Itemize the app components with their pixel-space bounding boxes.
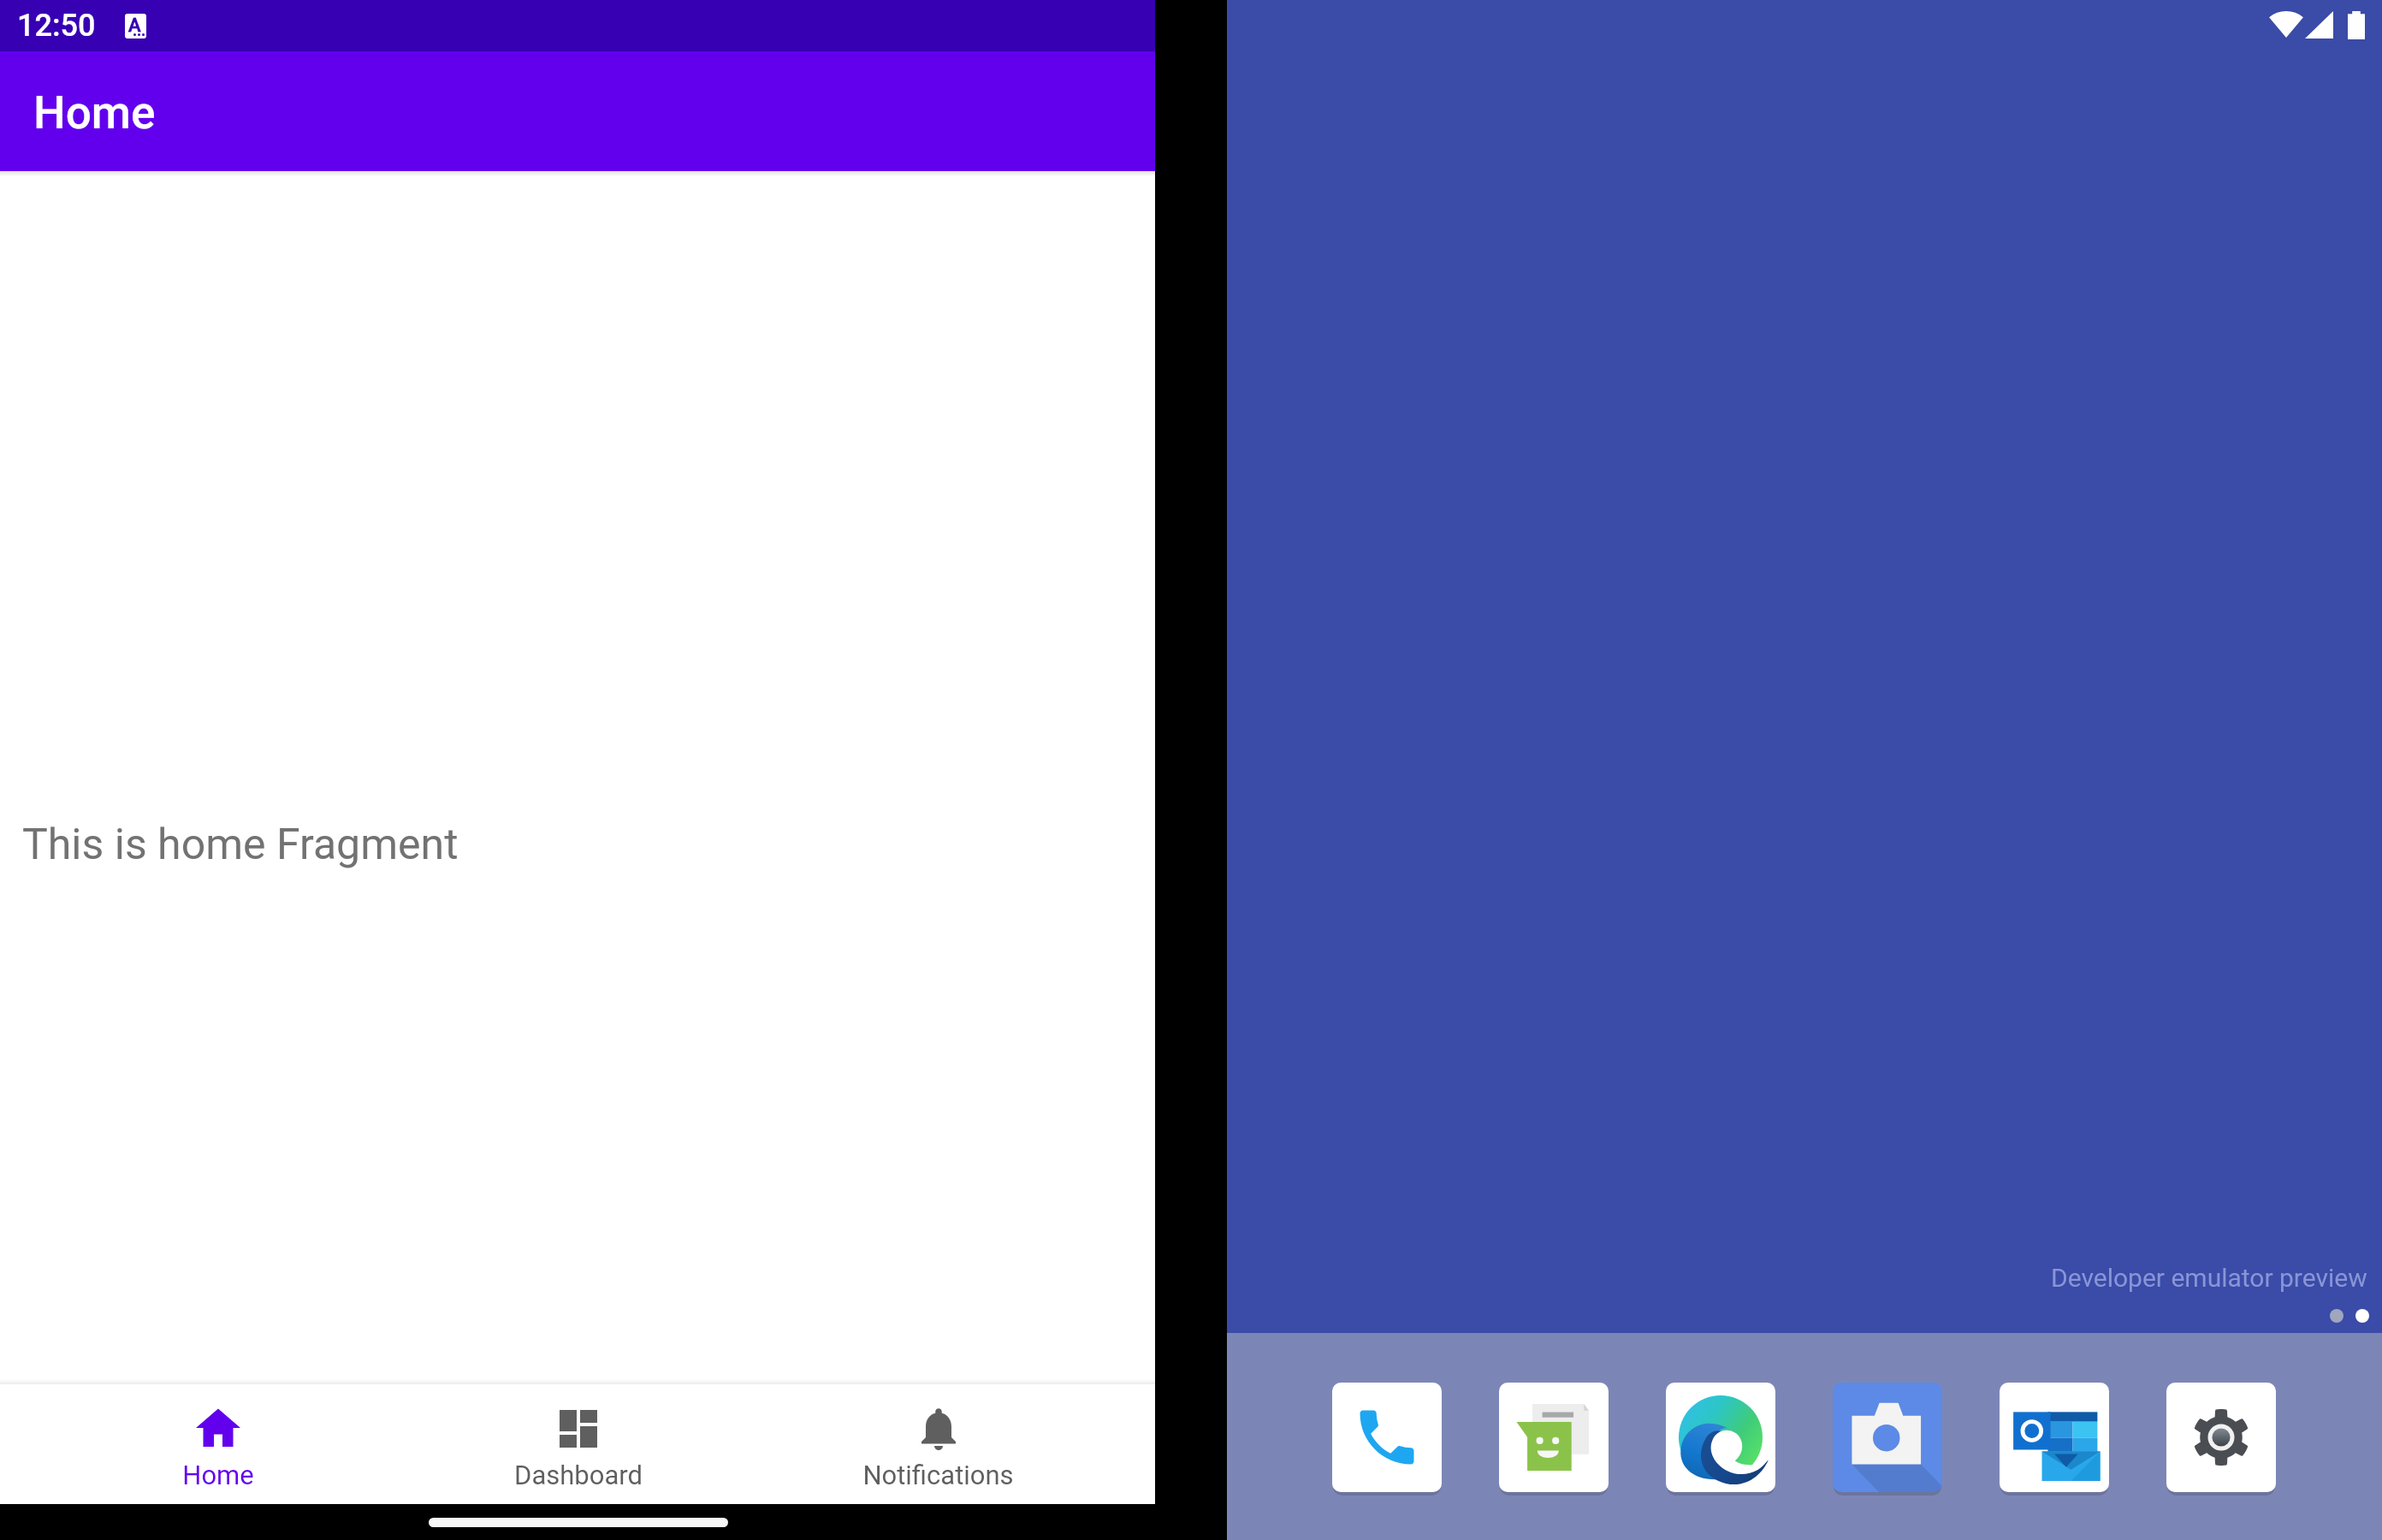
staticText: Home — [182, 1460, 254, 1490]
button[interactable]: Settings — [2166, 1383, 2276, 1492]
button[interactable]: Home — [38, 1384, 398, 1504]
staticText: Dashboard — [514, 1460, 643, 1490]
button[interactable]: Edge browser — [1666, 1383, 1775, 1492]
button[interactable]: Camera — [1833, 1383, 1942, 1492]
button[interactable]: Notifications — [758, 1384, 1118, 1504]
staticText: Home — [33, 86, 156, 139]
button[interactable]: Messages — [1499, 1383, 1609, 1492]
staticText: This is home Fragment — [22, 820, 459, 870]
staticText: Developer emulator preview — [2051, 1263, 2367, 1293]
staticText: Notifications — [862, 1460, 1014, 1490]
staticText: 12:50 — [17, 8, 96, 44]
button[interactable]: Dashboard — [398, 1384, 758, 1504]
button[interactable]: Outlook — [2000, 1383, 2109, 1492]
staticText: A — [128, 15, 141, 37]
button[interactable]: Phone — [1332, 1383, 1442, 1492]
